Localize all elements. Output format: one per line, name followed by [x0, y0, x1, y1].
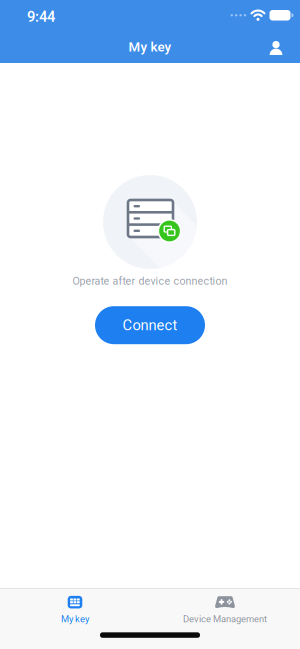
staticText: Connect: [122, 317, 177, 334]
staticText: Operate after device connection: [72, 275, 227, 287]
staticText: My key: [61, 614, 89, 624]
staticText: 9:44: [27, 8, 55, 25]
staticText: Device Management: [183, 614, 267, 624]
button[interactable]: Device Management: [150, 596, 300, 624]
button[interactable]: My key: [0, 596, 150, 624]
staticText: My key: [128, 39, 171, 55]
button[interactable]: Connect: [95, 306, 205, 344]
button[interactable]: Account: [269, 40, 300, 54]
